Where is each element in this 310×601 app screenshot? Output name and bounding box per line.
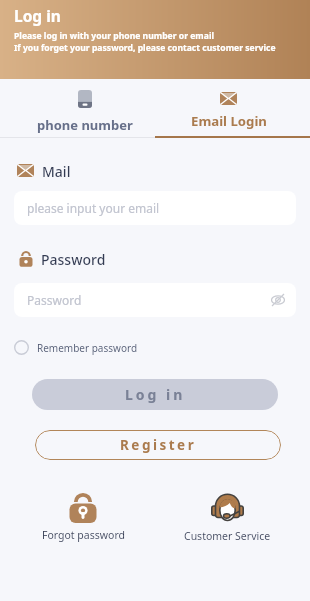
staticText: Remember password (37, 341, 138, 355)
button[interactable]: please input your email (14, 191, 296, 225)
button[interactable]: Email Login (155, 79, 310, 138)
staticText: Password (27, 292, 82, 308)
staticText: Register (120, 436, 197, 454)
staticText: Forgot password (42, 528, 125, 542)
button[interactable]: Forgot password (33, 493, 133, 542)
staticText: Log in (125, 385, 186, 404)
staticText: phone number (37, 116, 133, 134)
staticText: Customer Service (184, 529, 271, 543)
button[interactable]: Customer Service (177, 493, 277, 543)
staticText: Please log in with your phone number or … (14, 30, 215, 42)
staticText: If you forget your password, please cont… (14, 42, 276, 54)
button[interactable]: Log in (32, 379, 278, 410)
staticText: Mail (42, 162, 71, 178)
staticText: please input your email (27, 200, 160, 216)
staticText: Password (41, 250, 106, 267)
button[interactable]: Register (35, 430, 281, 460)
staticText: Log in (14, 5, 61, 26)
staticText: Email Login (191, 112, 267, 130)
button[interactable]: Remember password (14, 340, 138, 355)
button[interactable]: phone number (0, 79, 155, 138)
button[interactable]: Password (14, 283, 296, 317)
